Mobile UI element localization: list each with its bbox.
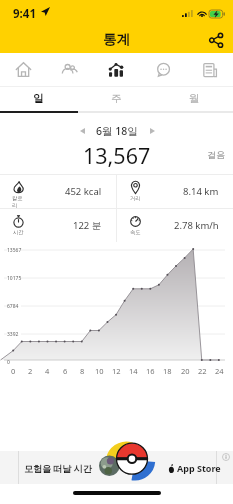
button[interactable]: News bbox=[186, 53, 233, 86]
button[interactable]: Share bbox=[203, 27, 229, 53]
button[interactable]: Chat bbox=[139, 53, 186, 86]
button[interactable]: Previous day bbox=[74, 123, 90, 139]
button[interactable]: Friends bbox=[46, 53, 92, 86]
staticText: 122 분 bbox=[73, 219, 102, 232]
button[interactable]: Next day bbox=[144, 123, 160, 139]
staticText: App Store bbox=[177, 462, 221, 474]
staticText: 0 bbox=[11, 366, 16, 376]
staticText: 22 bbox=[198, 366, 207, 376]
staticText: 걸음 bbox=[207, 149, 225, 160]
button[interactable]: 시간 bbox=[0, 209, 116, 242]
button[interactable]: 속도 bbox=[117, 209, 233, 242]
button[interactable]: 거리 bbox=[117, 175, 233, 208]
staticText: 3392 bbox=[7, 331, 19, 338]
staticText: 20 bbox=[181, 366, 190, 376]
staticText: 일 bbox=[33, 92, 44, 105]
staticText: 시간 bbox=[13, 229, 24, 236]
staticText: 12 bbox=[112, 366, 121, 376]
staticText: 2.78 km/h bbox=[174, 219, 219, 232]
staticText: 6784 bbox=[7, 303, 19, 310]
staticText: 13567 bbox=[7, 247, 22, 254]
staticText: 16 bbox=[146, 366, 155, 376]
staticText: 4 bbox=[45, 366, 50, 376]
button[interactable]: 일 bbox=[0, 86, 77, 111]
staticText: 거리 bbox=[130, 195, 141, 202]
staticText: 8.14 km bbox=[183, 185, 219, 198]
staticText: 18 bbox=[163, 366, 172, 376]
staticText: 속도 bbox=[130, 229, 141, 236]
staticText: 9:41 bbox=[13, 6, 36, 22]
staticText: 8 bbox=[80, 366, 85, 376]
staticText: 칼로리 bbox=[12, 195, 25, 209]
staticText: 10 bbox=[95, 366, 104, 376]
staticText: 24 bbox=[215, 366, 224, 376]
staticText: 14 bbox=[129, 366, 138, 376]
staticText: 2 bbox=[28, 366, 33, 376]
staticText: 6월 18일 bbox=[96, 124, 138, 138]
staticText: 통계 bbox=[103, 31, 130, 48]
staticText: 13,567 bbox=[83, 141, 151, 167]
staticText: 주 bbox=[111, 92, 122, 105]
button[interactable]: Home bbox=[0, 53, 46, 86]
button[interactable]: 모험을 떠날 시간 bbox=[0, 451, 233, 484]
staticText: 월 bbox=[189, 92, 200, 105]
button[interactable]: Statistics bbox=[92, 53, 139, 86]
staticText: 6 bbox=[63, 366, 68, 376]
button[interactable]: 칼로리 bbox=[0, 175, 116, 208]
staticText: 10175 bbox=[7, 275, 22, 282]
button[interactable]: 월 bbox=[155, 86, 233, 111]
staticText: 0 bbox=[7, 359, 10, 366]
staticText: 452 kcal bbox=[65, 185, 102, 198]
button[interactable]: 주 bbox=[77, 86, 155, 111]
staticText: 모험을 떠날 시간 bbox=[24, 462, 92, 474]
